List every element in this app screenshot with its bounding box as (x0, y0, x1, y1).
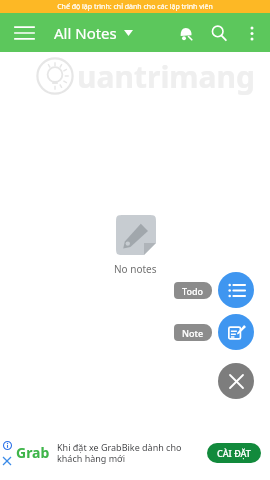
staticText: Khi đặt xe GrabBike dành cho khách hàng … (57, 441, 202, 465)
button[interactable]: All Notes (50, 19, 137, 47)
button[interactable]: CÀI ĐẶT (207, 443, 261, 463)
staticText: Note (182, 327, 204, 339)
staticText: Todo (182, 285, 204, 297)
button[interactable]: Note (174, 314, 254, 350)
button[interactable]: Reminders (168, 16, 202, 50)
button[interactable]: Close ad (1, 455, 13, 467)
staticText: Grab (16, 443, 50, 462)
button[interactable]: Close menu (218, 363, 254, 399)
staticText: Chế độ lập trình: chỉ dành cho các lập t… (57, 2, 213, 12)
button[interactable]: Ad information (1, 439, 13, 451)
button[interactable]: Open navigation drawer (6, 15, 42, 51)
staticText: All Notes (54, 23, 117, 43)
staticText: CÀI ĐẶT (217, 447, 251, 459)
staticText: No notes (114, 262, 157, 276)
button[interactable]: Todo (174, 272, 254, 308)
button[interactable]: Search (202, 16, 236, 50)
staticText: uantrimang (77, 56, 256, 97)
button[interactable]: Ad information (0, 425, 270, 480)
button[interactable]: More options (236, 17, 268, 49)
